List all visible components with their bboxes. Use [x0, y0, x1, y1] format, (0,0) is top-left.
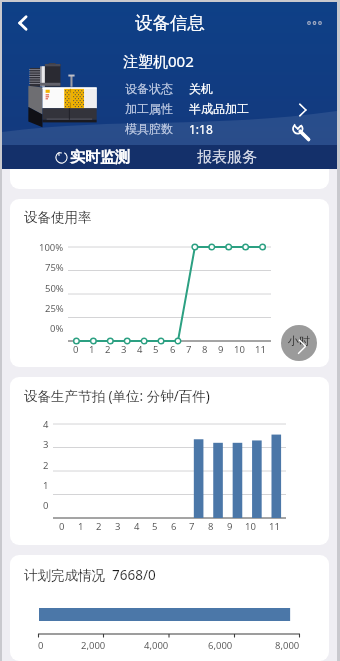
staticText: 8	[208, 520, 214, 533]
staticText: 8,000	[275, 639, 300, 652]
staticText: 3	[121, 343, 127, 356]
staticText: 2	[96, 520, 102, 533]
staticText: 6	[171, 520, 177, 533]
staticText: 10	[245, 520, 256, 533]
staticText: 3	[43, 438, 49, 451]
staticText: 设备使用率	[24, 209, 92, 226]
staticText: 8	[202, 343, 208, 356]
button[interactable]: Hour unit	[281, 325, 317, 361]
staticText: 7668/0	[112, 566, 156, 584]
staticText: 0	[38, 639, 44, 652]
staticText: 2,000	[81, 639, 106, 652]
staticText: 加工属性	[125, 101, 189, 116]
staticText: 4,000	[144, 639, 169, 652]
staticText: 5	[153, 343, 159, 356]
staticText: 6,000	[208, 639, 233, 652]
staticText: 1	[78, 520, 84, 533]
staticText: 50%	[45, 282, 64, 295]
staticText: 75%	[45, 261, 64, 274]
staticText: 9	[218, 343, 224, 356]
staticText: 11	[255, 343, 266, 356]
staticText: 7	[186, 343, 192, 356]
staticText: 11	[269, 520, 280, 533]
staticText: 设备生产节拍 (单位: 分钟/百件)	[24, 387, 210, 405]
button[interactable]: Details	[294, 101, 312, 119]
staticText: 5	[152, 520, 158, 533]
staticText: 1	[43, 479, 49, 492]
staticText: 设备状态	[125, 81, 189, 96]
staticText: 小时	[288, 334, 310, 348]
button[interactable]: Back	[2, 2, 44, 44]
staticText: 模具腔数	[125, 121, 189, 136]
button[interactable]: Settings	[291, 122, 311, 142]
staticText: 2	[105, 343, 111, 356]
staticText: 4	[137, 343, 143, 356]
staticText: 实时监测	[70, 148, 130, 167]
staticText: 4	[43, 418, 49, 431]
button[interactable]: More options	[295, 3, 335, 43]
staticText: 0	[73, 343, 79, 356]
staticText: 2	[43, 459, 49, 472]
staticText: 9	[227, 520, 233, 533]
staticText: 注塑机002	[123, 51, 194, 71]
staticText: 0	[59, 520, 65, 533]
staticText: 设备信息	[135, 12, 205, 34]
staticText: 0%	[50, 322, 64, 335]
staticText: 计划完成情况	[24, 567, 105, 584]
staticText: 10	[234, 343, 245, 356]
staticText: 关机	[189, 81, 213, 96]
button[interactable]: 报表服务	[197, 145, 257, 169]
staticText: 报表服务	[197, 148, 257, 167]
button[interactable]: 实时监测	[55, 145, 130, 169]
staticText: 1	[89, 343, 95, 356]
staticText: 0	[43, 499, 49, 512]
staticText: 100%	[39, 241, 64, 254]
staticText: 半成品加工	[189, 101, 249, 116]
staticText: 4	[134, 520, 140, 533]
staticText: 25%	[45, 302, 64, 315]
staticText: 1:18	[189, 121, 213, 137]
staticText: 6	[170, 343, 176, 356]
staticText: 3	[115, 520, 121, 533]
staticText: 7	[189, 520, 195, 533]
